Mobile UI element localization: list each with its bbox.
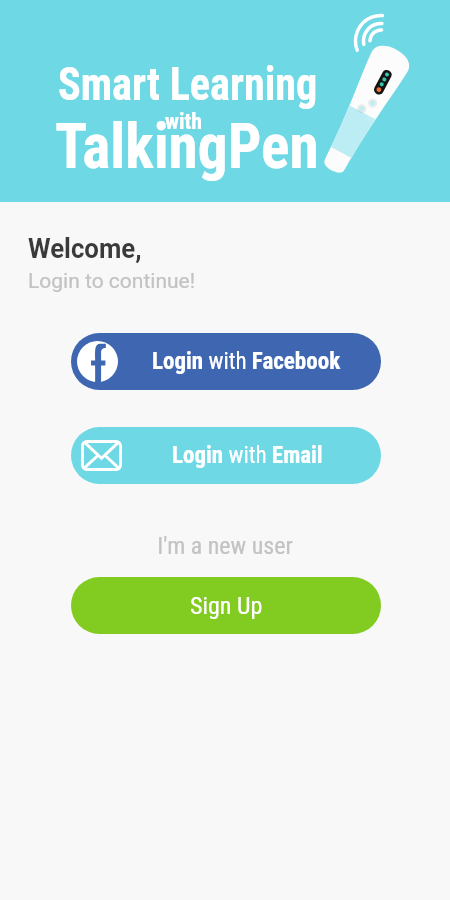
staticText: TalkingPen (55, 110, 319, 184)
button[interactable]: Login with Email (71, 427, 381, 484)
staticText: I'm a new user (157, 532, 293, 560)
staticText: Login to continue! (28, 269, 196, 294)
staticText: Sign Up (190, 592, 263, 620)
button[interactable]: I'm a new user (0, 531, 450, 561)
staticText: Login with Facebook (152, 348, 341, 375)
staticText: with (165, 109, 203, 135)
button[interactable]: Login with Facebook (71, 333, 381, 390)
staticText: Smart Learning (58, 56, 317, 111)
button[interactable]: Sign Up (71, 577, 381, 634)
staticText: Login with Email (172, 442, 323, 469)
staticText: Welcome, (28, 232, 142, 265)
